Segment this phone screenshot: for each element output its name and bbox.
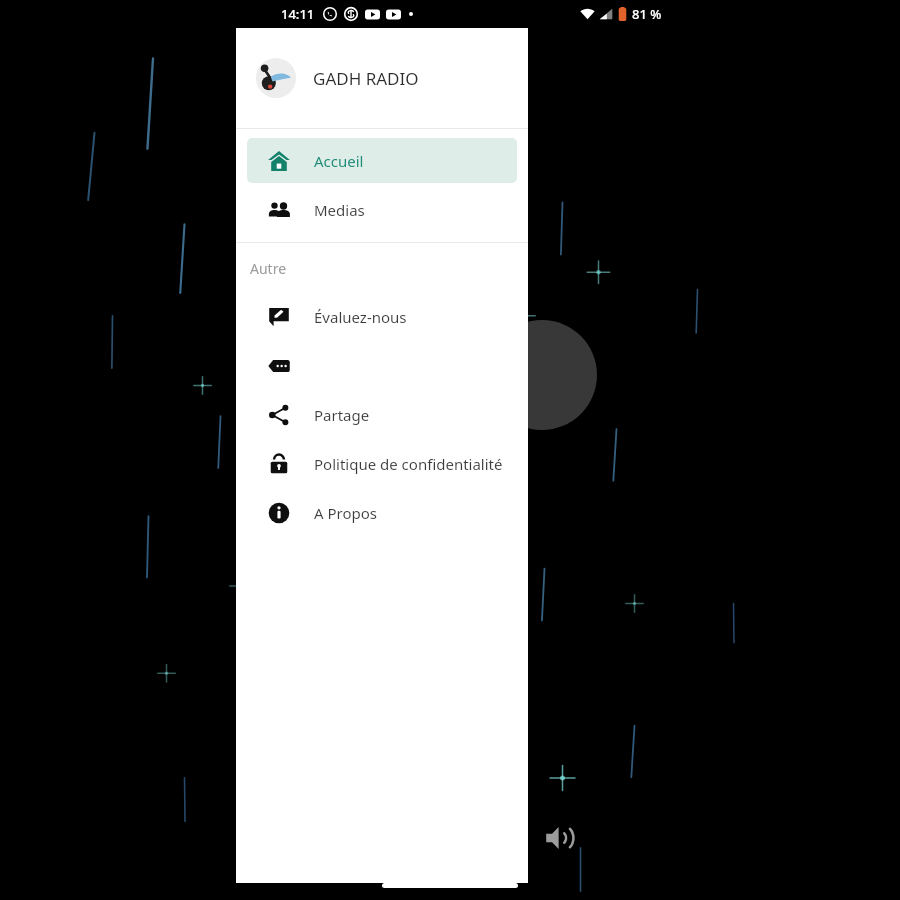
staticText: Partage: [314, 405, 370, 425]
staticText: Autre: [250, 259, 287, 278]
button[interactable]: Medias: [247, 187, 517, 232]
staticText: Politique de confidentialité: [314, 454, 503, 474]
staticText: 14:11: [281, 5, 315, 23]
button[interactable]: Politique de confidentialité: [247, 441, 517, 486]
button[interactable]: Partage: [247, 392, 517, 437]
staticText: GADH RADIO: [313, 67, 419, 90]
button[interactable]: Évaluez-nous: [247, 294, 517, 339]
button[interactable]: Messages: [247, 343, 517, 388]
staticText: A Propos: [314, 503, 378, 523]
staticText: Accueil: [314, 151, 364, 171]
button[interactable]: GADH RADIO: [256, 28, 528, 128]
staticText: 81 %: [632, 5, 662, 23]
staticText: Medias: [314, 200, 365, 220]
button[interactable]: Volume: [545, 823, 575, 853]
staticText: Évaluez-nous: [314, 307, 407, 327]
button[interactable]: A Propos: [247, 490, 517, 535]
button[interactable]: Accueil: [247, 138, 517, 183]
